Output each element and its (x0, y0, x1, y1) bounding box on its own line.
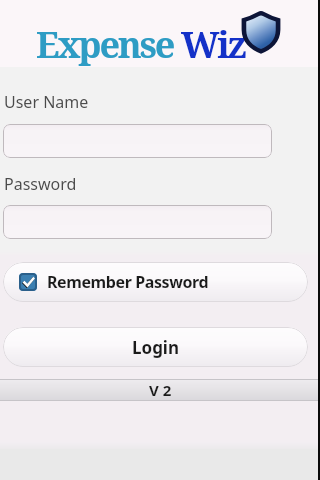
staticText: Remember Password (47, 271, 209, 293)
staticText: Wiz (181, 20, 245, 69)
staticText: User Name (4, 91, 89, 113)
button[interactable]: Login (3, 327, 308, 367)
button[interactable]: Password input (3, 205, 272, 239)
other: App logo (241, 10, 281, 54)
button[interactable]: User Name input (3, 124, 272, 158)
staticText: Login (132, 336, 180, 359)
staticText: V 2 (149, 380, 172, 400)
staticText: Expense (36, 20, 181, 69)
button[interactable]: Remember Password (3, 262, 308, 302)
staticText: Password (4, 173, 77, 195)
